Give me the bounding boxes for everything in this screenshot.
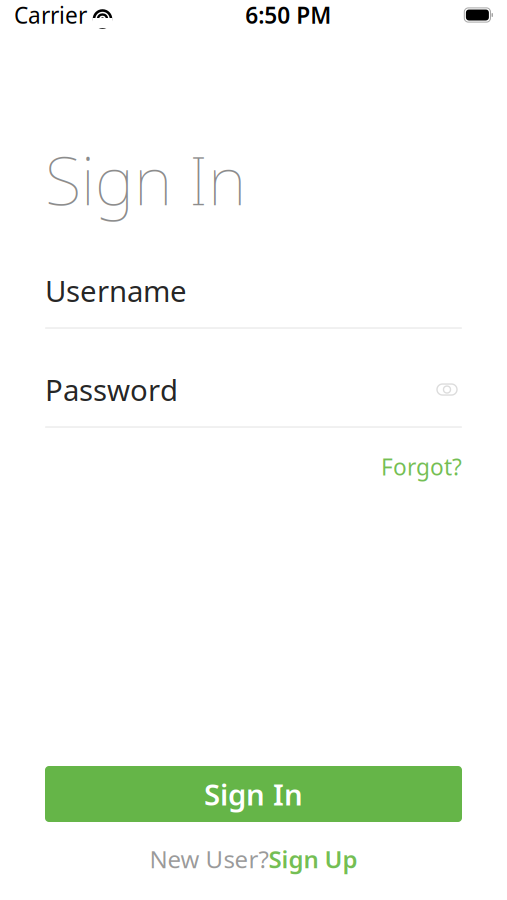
staticText: Password: [45, 370, 178, 409]
staticText: Sign In: [204, 774, 303, 813]
staticText: New User?: [149, 843, 268, 875]
staticText: 6:50 PM: [245, 0, 331, 30]
staticText: Sign In: [45, 135, 246, 223]
staticText: Carrier: [14, 0, 87, 30]
button[interactable]: Forgot?: [381, 451, 462, 482]
button[interactable]: Show password: [432, 374, 462, 404]
staticText: Sign Up: [268, 843, 357, 875]
button[interactable]: New User?: [149, 844, 357, 874]
button[interactable]: Sign In: [45, 766, 462, 822]
staticText: Username: [45, 271, 187, 310]
staticText: Forgot?: [381, 451, 462, 482]
